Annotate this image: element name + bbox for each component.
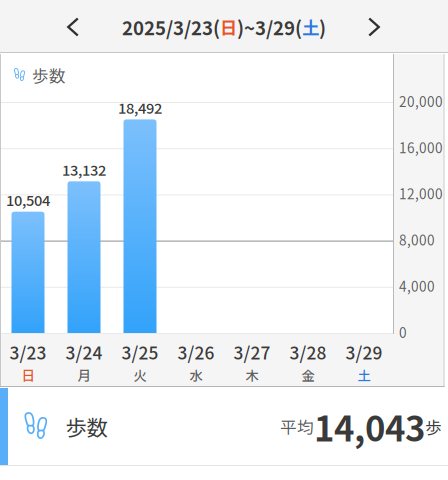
staticText: 3/28 — [289, 339, 326, 364]
staticText: 3/29 — [345, 339, 382, 364]
button[interactable]: 歩数 — [0, 388, 448, 465]
staticText: 土 — [302, 14, 319, 40]
staticText: 歩数 — [66, 411, 108, 442]
staticText: 18,492 — [118, 97, 162, 118]
staticText: 3/27 — [233, 339, 270, 364]
staticText: 0 — [399, 322, 407, 342]
staticText: 歩数 — [32, 63, 66, 87]
staticText: 金 — [301, 365, 314, 385]
staticText: 3/26 — [177, 339, 214, 364]
staticText: )~3/29( — [237, 13, 302, 40]
staticText: 日 — [220, 14, 237, 40]
staticText: ) — [319, 13, 326, 40]
staticText: 14,043 — [314, 401, 425, 452]
staticText: 10,504 — [6, 189, 50, 210]
staticText: 土 — [357, 365, 370, 385]
staticText: 3/23 — [9, 339, 46, 364]
staticText: 月 — [77, 365, 90, 385]
staticText: 日 — [21, 365, 34, 385]
staticText: 3/24 — [65, 339, 102, 364]
staticText: 20,000 — [399, 91, 443, 111]
staticText: 水 — [189, 365, 202, 385]
staticText: 13,132 — [62, 159, 106, 180]
staticText: 平均 — [280, 414, 314, 438]
staticText: 歩 — [425, 414, 442, 438]
staticText: 2025/3/23( — [122, 13, 220, 40]
staticText: 3/25 — [121, 339, 158, 364]
staticText: 16,000 — [399, 137, 443, 157]
button[interactable]: 次の週 — [350, 5, 398, 49]
staticText: 12,000 — [399, 184, 443, 203]
button[interactable]: 前の週 — [49, 5, 97, 49]
staticText: 8,000 — [399, 230, 435, 249]
staticText: 4,000 — [399, 276, 435, 296]
staticText: 木 — [245, 365, 258, 385]
staticText: 火 — [133, 365, 146, 385]
